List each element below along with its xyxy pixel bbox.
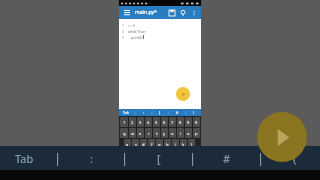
button[interactable]: w	[129, 128, 136, 138]
button[interactable]: [	[134, 146, 184, 170]
button[interactable]: |	[116, 146, 134, 170]
button[interactable]: l	[188, 139, 195, 149]
button[interactable]: [	[153, 109, 167, 116]
button[interactable]: d	[140, 139, 147, 149]
button[interactable]: j	[172, 139, 179, 149]
button[interactable]: |	[167, 109, 170, 116]
button[interactable]: y	[161, 128, 168, 138]
button[interactable]: 0	[193, 117, 200, 127]
button[interactable]: k	[180, 139, 187, 149]
button[interactable]: 4	[145, 117, 152, 127]
staticText: ↵	[193, 164, 197, 169]
button[interactable]: q	[120, 128, 128, 138]
button[interactable]: r	[145, 128, 152, 138]
button[interactable]: 3	[137, 117, 144, 127]
button[interactable]: (	[270, 146, 320, 170]
button[interactable]: 1	[120, 117, 128, 127]
button[interactable]: More options	[189, 8, 198, 17]
staticText: [	[159, 110, 161, 115]
button[interactable]: Tab	[0, 146, 49, 170]
button[interactable]: (	[187, 109, 201, 116]
button[interactable]: English	[151, 161, 179, 171]
button[interactable]: o	[185, 128, 192, 138]
button[interactable]: Search	[178, 8, 187, 17]
button[interactable]: h	[164, 139, 171, 149]
staticText: 3	[139, 120, 142, 125]
button[interactable]: :	[66, 146, 116, 170]
button[interactable]: #	[170, 109, 184, 116]
staticText: print(i)	[131, 35, 142, 40]
button[interactable]: f	[148, 139, 155, 149]
button[interactable]: p	[193, 128, 200, 138]
button[interactable]: |	[252, 146, 270, 170]
button[interactable]: Save	[167, 8, 176, 17]
button[interactable]: 2	[129, 117, 136, 127]
button[interactable]: 8	[177, 117, 184, 127]
staticText: r	[148, 131, 150, 136]
button[interactable]: t	[153, 128, 160, 138]
button[interactable]: ↵	[189, 161, 200, 171]
button[interactable]: ☺	[133, 161, 141, 171]
button[interactable]: a	[124, 139, 131, 149]
staticText: 9	[187, 120, 190, 125]
staticText: #	[176, 110, 179, 115]
button[interactable]: Open navigation drawer	[122, 8, 131, 17]
button[interactable]: 5	[153, 117, 160, 127]
button[interactable]: ⇧	[120, 150, 131, 160]
staticText: (	[293, 151, 297, 166]
staticText: [	[157, 151, 161, 166]
button[interactable]: |	[184, 146, 202, 170]
button[interactable]: Run	[257, 112, 307, 162]
button[interactable]: :	[136, 109, 150, 116]
button[interactable]: ⌫	[190, 150, 200, 160]
button[interactable]: |	[150, 109, 153, 116]
button[interactable]: e	[137, 128, 144, 138]
button[interactable]: Run	[176, 87, 190, 101]
button[interactable]: 6	[161, 117, 168, 127]
button[interactable]: |	[49, 146, 66, 170]
staticText: 8	[179, 120, 182, 125]
staticText: |	[257, 149, 265, 167]
button[interactable]: s	[132, 139, 139, 149]
button[interactable]: 7	[169, 117, 176, 127]
staticText: i	[180, 131, 182, 136]
button[interactable]: .	[180, 161, 188, 171]
button[interactable]: 9	[185, 117, 192, 127]
button[interactable]: g	[156, 139, 163, 149]
staticText: p	[195, 131, 198, 136]
button[interactable]: |	[133, 109, 136, 116]
button[interactable]: v	[158, 150, 165, 160]
staticText: |	[151, 110, 153, 115]
staticText: o	[187, 131, 190, 136]
staticText: |	[168, 110, 170, 115]
staticText: q	[123, 131, 126, 136]
button[interactable]: u	[169, 128, 176, 138]
button[interactable]: ,	[142, 161, 150, 171]
staticText: |	[121, 149, 129, 167]
button[interactable]: ?123	[120, 161, 132, 171]
staticText: |	[54, 149, 62, 167]
button[interactable]: i	[177, 128, 184, 138]
staticText: |	[185, 110, 187, 115]
button[interactable]: Tab	[119, 109, 133, 116]
button[interactable]: #	[202, 146, 252, 170]
button[interactable]: |	[184, 109, 187, 116]
staticText: 0	[195, 120, 198, 125]
staticText: :	[90, 151, 93, 166]
staticText: |	[134, 110, 136, 115]
